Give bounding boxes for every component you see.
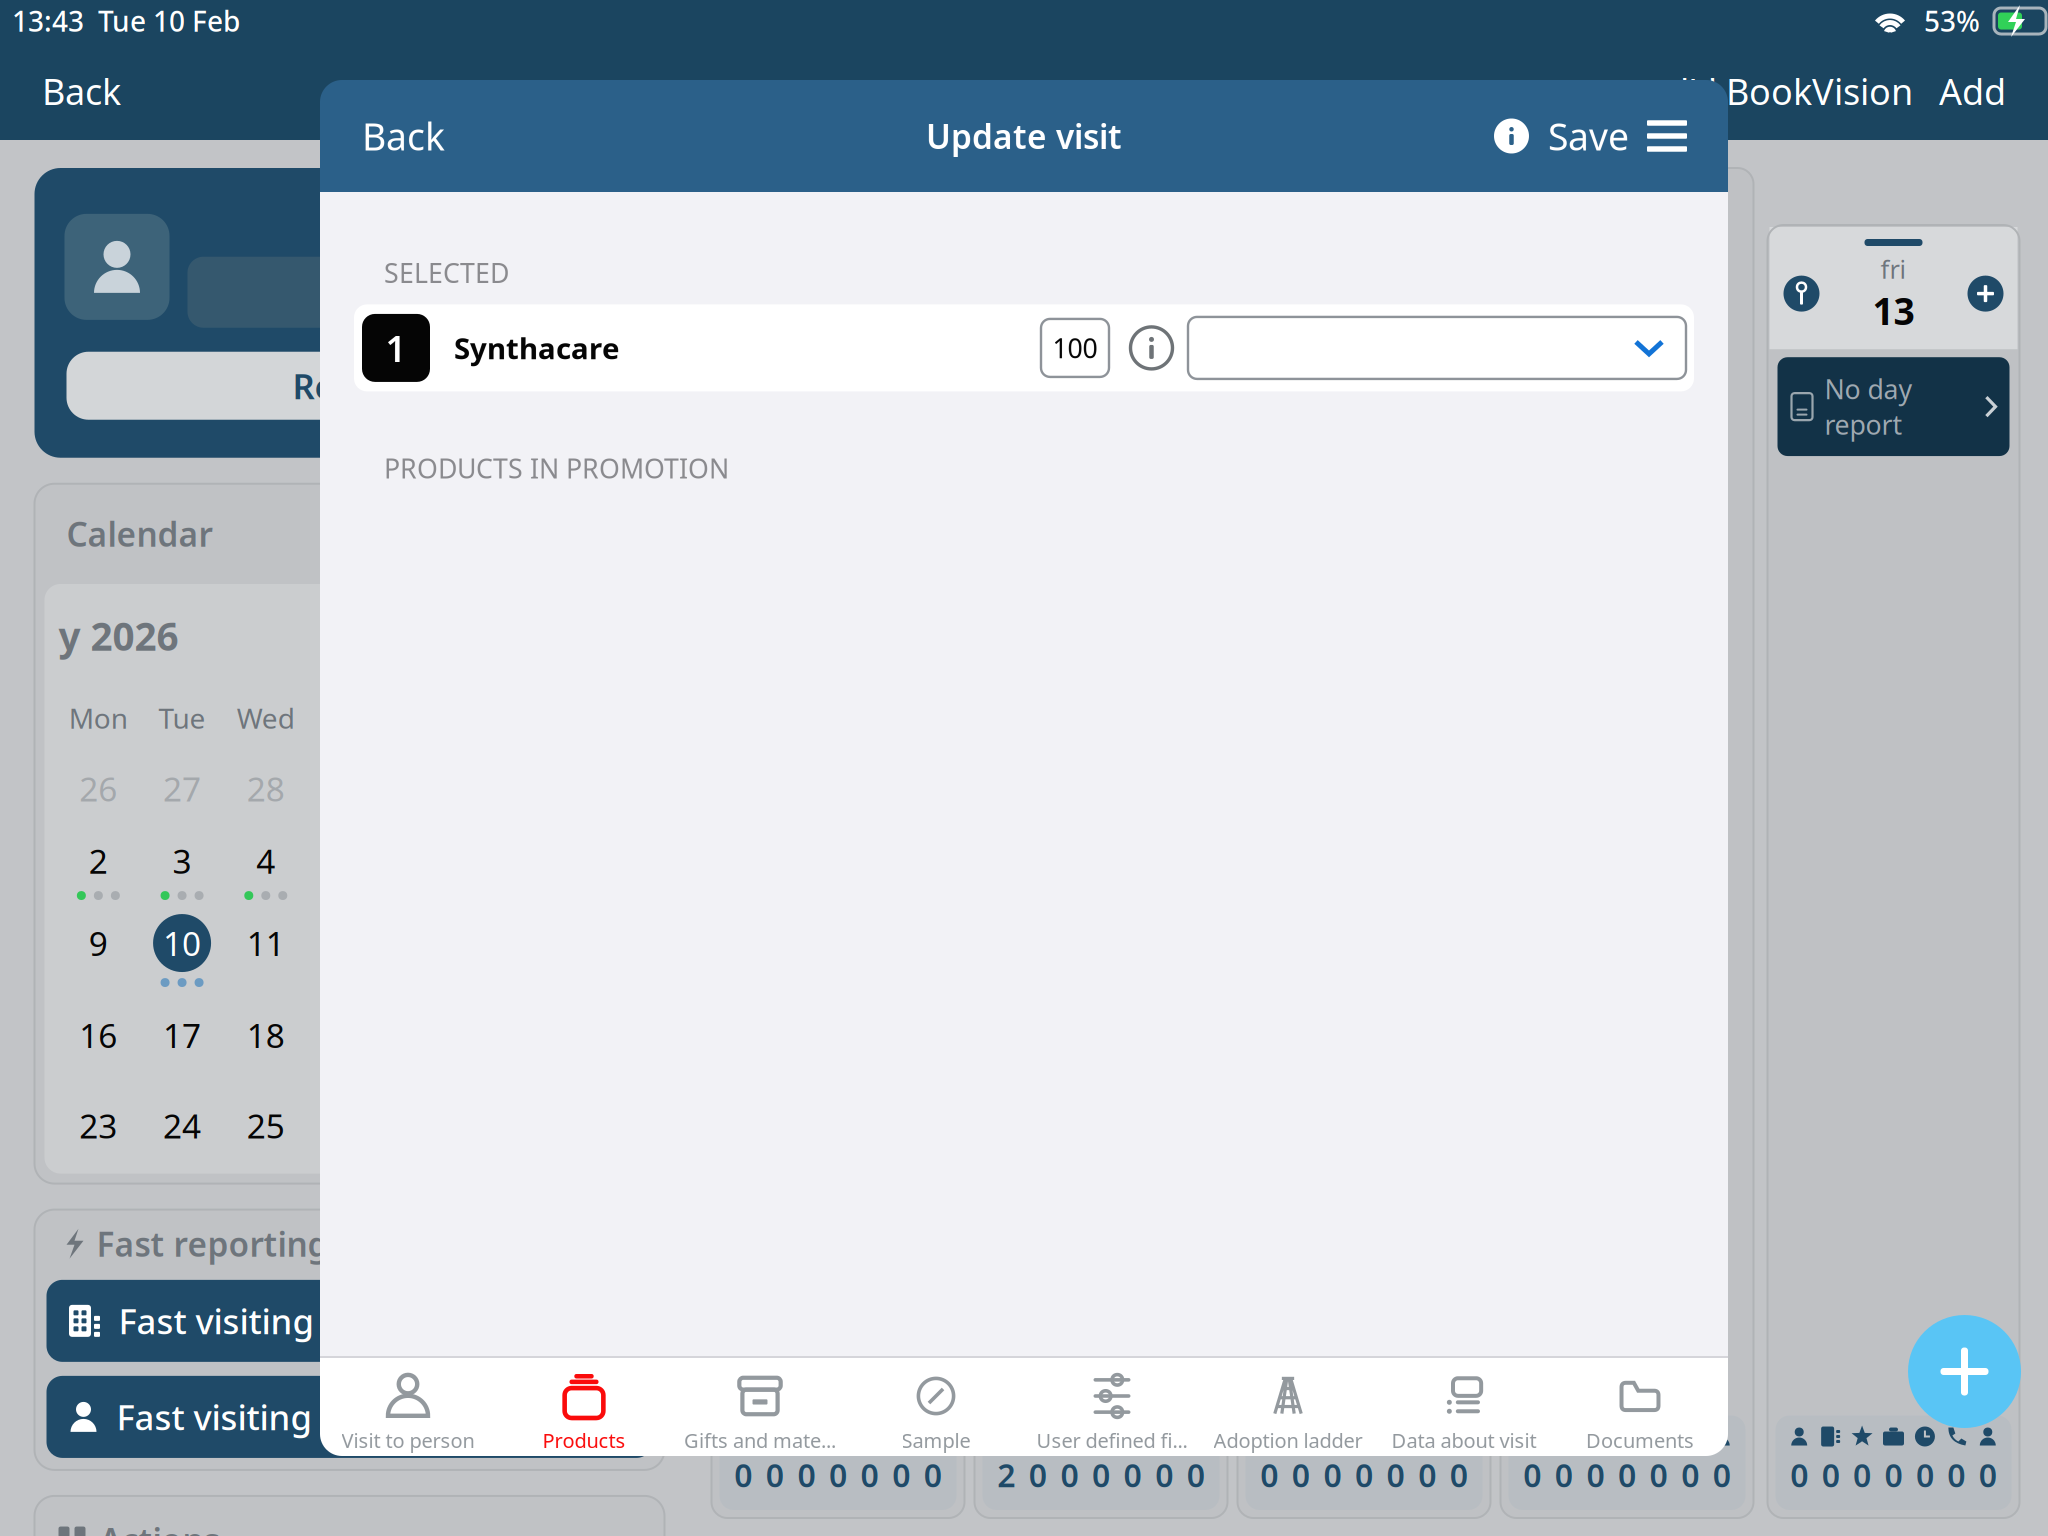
staticText: 0 — [1029, 1453, 1047, 1496]
staticText: Synthacare — [454, 328, 620, 367]
button[interactable]: 1 — [354, 304, 1694, 391]
staticText: Actions — [99, 1518, 219, 1536]
staticText: 0 — [892, 1453, 910, 1496]
button[interactable]: Adoption ladder — [1200, 1358, 1376, 1456]
button[interactable]: Add — [1913, 47, 2006, 135]
staticText: Update visit — [926, 114, 1122, 158]
staticText: 0 — [1790, 1453, 1808, 1496]
staticText: 0 — [1418, 1453, 1436, 1496]
button[interactable]: Back — [362, 89, 469, 183]
staticText: Calendar — [66, 512, 212, 556]
staticText: Data about visit — [1391, 1427, 1536, 1454]
staticText: report — [1824, 407, 1902, 442]
staticText: Visit to person — [341, 1427, 474, 1454]
button[interactable]: Add visit — [1967, 276, 2003, 312]
staticText: 17 — [163, 1013, 201, 1057]
staticText: 100 — [1052, 330, 1097, 366]
button[interactable]: Back — [42, 47, 121, 135]
button[interactable]: Visit to person — [320, 1358, 496, 1456]
staticText: 18 — [247, 1013, 285, 1057]
staticText: 4 — [256, 839, 275, 883]
staticText: 0 — [861, 1453, 879, 1496]
staticText: Report — [292, 363, 406, 409]
staticText: l'd BookVision — [1680, 67, 1913, 115]
staticText: Add — [1939, 67, 2006, 115]
button[interactable]: User defined fi... — [1024, 1358, 1200, 1456]
staticText: 0 — [829, 1453, 847, 1496]
staticText: Brooks — [346, 267, 476, 318]
staticText: 0 — [734, 1453, 752, 1496]
staticText: Sample — [901, 1427, 970, 1454]
staticText: 53% — [1924, 2, 1980, 40]
staticText: 26 — [79, 766, 117, 811]
staticText: 0 — [766, 1453, 784, 1496]
staticText: Gifts and mate... — [684, 1427, 836, 1454]
staticText: Mon — [69, 699, 128, 736]
staticText: Fast reporting — [96, 1222, 328, 1266]
staticText: 25 — [247, 1103, 285, 1148]
button[interactable]: Sample — [848, 1358, 1024, 1456]
button[interactable]: Gifts and mate... — [672, 1358, 848, 1456]
staticText: 0 — [1260, 1453, 1278, 1496]
staticText: 0 — [1450, 1453, 1468, 1496]
staticText: 0 — [1822, 1453, 1840, 1496]
staticText: 0 — [1586, 1453, 1604, 1496]
staticText: Documents — [1586, 1427, 1694, 1454]
staticText: 10 — [163, 921, 201, 965]
staticText: User defined fi... — [1036, 1427, 1187, 1454]
staticText: 0 — [1387, 1453, 1405, 1496]
staticText: 11 — [247, 921, 285, 965]
staticText: 0 — [1187, 1453, 1205, 1496]
button[interactable]: Products — [496, 1358, 672, 1456]
staticText: 24 — [163, 1103, 201, 1148]
staticText: 1 — [385, 324, 406, 372]
button[interactable]: Save — [1494, 89, 1629, 183]
staticText: Products — [542, 1427, 625, 1454]
staticText: 27 — [163, 766, 201, 811]
staticText: Wed — [237, 699, 295, 736]
staticText: 0 — [924, 1453, 942, 1496]
staticText: Tue 10 Feb — [84, 2, 240, 40]
button[interactable]: Add — [1908, 1315, 2021, 1428]
staticText: Adoption ladder — [1213, 1427, 1362, 1454]
button[interactable]: Pin day — [1783, 276, 1819, 312]
button[interactable]: Data about visit — [1376, 1358, 1552, 1456]
staticText: 23 — [79, 1103, 117, 1148]
staticText: 0 — [1916, 1453, 1934, 1496]
staticText: 0 — [1681, 1453, 1699, 1496]
staticText: 0 — [1124, 1453, 1142, 1496]
staticText: PRODUCTS IN PROMOTION — [384, 450, 729, 486]
staticText: 0 — [1555, 1453, 1573, 1496]
staticText: 0 — [1323, 1453, 1341, 1496]
staticText: Fast visiting o — [116, 1394, 341, 1440]
staticText: 0 — [1618, 1453, 1636, 1496]
staticText: y 2026 — [58, 610, 178, 661]
staticText: 13 — [1872, 286, 1914, 335]
staticText: 2 — [997, 1453, 1015, 1496]
staticText: fri — [1880, 252, 1906, 286]
staticText: Tue — [159, 699, 206, 736]
staticText: 0 — [1155, 1453, 1173, 1496]
button[interactable]: Menu — [1629, 98, 1687, 174]
button[interactable]: Documents — [1552, 1358, 1728, 1456]
staticText: 0 — [1650, 1453, 1668, 1496]
